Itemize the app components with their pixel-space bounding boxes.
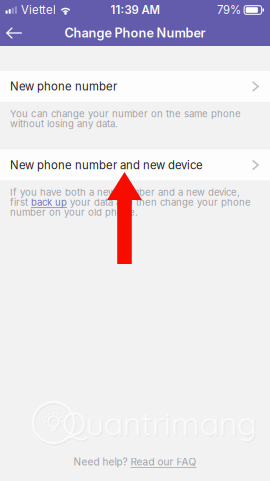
staticText: number on your old phone.	[10, 206, 138, 218]
staticText: Need help?	[73, 456, 130, 468]
button[interactable]: Back	[0, 20, 36, 46]
staticText: without losing any data.	[10, 118, 118, 129]
staticText: 79%	[217, 3, 241, 17]
staticText: New phone number	[10, 80, 117, 93]
staticText: your data and then change your phone	[67, 196, 251, 208]
staticText: If you have both a new number and a new …	[10, 186, 240, 198]
staticText: Quantrimang	[63, 405, 258, 445]
staticText: 11:39 AM	[110, 3, 159, 17]
button[interactable]: back up	[31, 196, 67, 208]
staticText: Read our FAQ	[130, 456, 196, 468]
button[interactable]: New phone number and new device	[0, 149, 270, 180]
staticText: You can change your number on the same p…	[10, 108, 241, 120]
button[interactable]: Read our FAQ	[130, 456, 196, 468]
staticText: Viettel	[21, 3, 56, 17]
staticText: Change Phone Number	[64, 25, 205, 41]
staticText: New phone number and new device	[10, 158, 203, 172]
staticText: back up	[31, 196, 67, 208]
staticText: first	[10, 196, 31, 208]
button[interactable]: New phone number	[0, 71, 270, 102]
staticText: Quantrimang	[62, 404, 257, 443]
